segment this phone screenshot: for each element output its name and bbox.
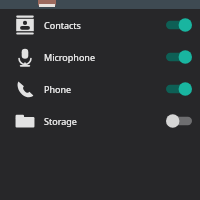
button[interactable]: Toggle on bbox=[166, 49, 192, 65]
button[interactable]: Toggle on bbox=[166, 17, 192, 33]
button[interactable]: Toggle off bbox=[166, 113, 192, 129]
button[interactable]: Toggle on bbox=[166, 81, 192, 97]
staticText: Storage bbox=[44, 115, 77, 127]
staticText: Microphone bbox=[44, 51, 95, 63]
button[interactable]: Storage bbox=[0, 105, 200, 137]
button[interactable]: Contacts bbox=[0, 9, 200, 41]
staticText: Contacts bbox=[44, 19, 81, 31]
staticText: Phone bbox=[44, 83, 72, 95]
button[interactable]: Microphone bbox=[0, 41, 200, 73]
button[interactable]: Phone bbox=[0, 73, 200, 105]
